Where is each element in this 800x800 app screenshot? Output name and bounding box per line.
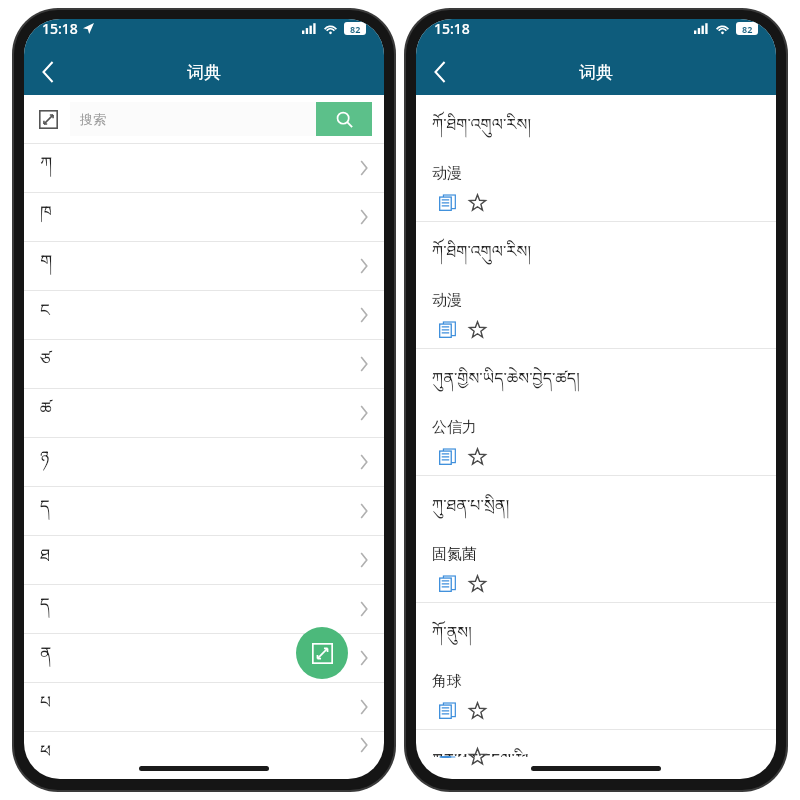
button[interactable]: Details [436, 572, 458, 594]
button[interactable]: Favorite [466, 191, 488, 213]
staticText: 搜索 [80, 111, 106, 127]
button[interactable]: Details [436, 191, 458, 213]
staticText: ན [40, 634, 52, 682]
staticText: ཐ [40, 536, 51, 584]
staticText: ད [40, 487, 50, 535]
button[interactable]: ང [24, 291, 384, 339]
button[interactable]: ཚ [24, 389, 384, 437]
button[interactable]: Favorite [466, 445, 488, 467]
button[interactable]: Details [436, 445, 458, 467]
button[interactable]: Expand [36, 107, 60, 131]
button[interactable]: ཁ [24, 193, 384, 241]
button[interactable]: ཀུ་ཐན་པ་སྲིན། [416, 476, 776, 602]
staticText: 固氮菌 [432, 545, 477, 564]
staticText: 公信力 [432, 418, 477, 437]
button[interactable]: ཀ [24, 144, 384, 192]
button[interactable]: ཀུན་ཕན་དངུལ་རྩི། [416, 730, 776, 757]
button[interactable]: Expand [296, 627, 348, 679]
staticText: 15:18 [434, 19, 470, 38]
button[interactable]: ཀོ་ཐིག་འགུལ་རིས། [416, 222, 776, 348]
button[interactable]: 搜索 [70, 102, 316, 136]
staticText: ཀུན་གྱིས་ཡིད་ཆེས་བྱེད་ཚད། [432, 361, 580, 406]
staticText: 角球 [432, 672, 462, 691]
staticText: 82 [742, 23, 753, 35]
staticText: 动漫 [432, 164, 462, 183]
staticText: ཚ [40, 389, 53, 437]
staticText: ཀོ་ནུས། [432, 615, 472, 660]
button[interactable]: ཕ [24, 732, 384, 757]
staticText: ཉ [40, 438, 50, 486]
button[interactable]: ད [24, 487, 384, 535]
staticText: ཕ [40, 732, 51, 757]
staticText: ཙ [40, 340, 51, 388]
button[interactable]: ཉ [24, 438, 384, 486]
staticText: 词典 [579, 62, 613, 83]
button[interactable]: ཀོ་ནུས། [416, 603, 776, 729]
staticText: 15:18 [42, 19, 78, 38]
staticText: ཀོ་ཐིག་འགུལ་རིས། [432, 107, 531, 152]
staticText: ཀ [40, 144, 52, 192]
button[interactable]: Search [316, 102, 372, 136]
staticText: ཀོ་ཐིག་འགུལ་རིས། [432, 234, 531, 279]
button[interactable]: Favorite [466, 572, 488, 594]
button[interactable]: Favorite [466, 699, 488, 721]
staticText: ད [40, 585, 50, 633]
button[interactable]: Favorite [466, 318, 488, 340]
staticText: ཀུ་ཐན་པ་སྲིན། [432, 488, 509, 533]
button[interactable]: Details [436, 699, 458, 721]
staticText: 词典 [187, 62, 221, 83]
button[interactable]: Back [416, 49, 464, 95]
button[interactable]: པ [24, 683, 384, 731]
button[interactable]: ཙ [24, 340, 384, 388]
staticText: ག [40, 242, 52, 290]
button[interactable]: Back [24, 49, 72, 95]
staticText: 82 [350, 23, 361, 35]
staticText: ང [40, 291, 50, 339]
button[interactable]: ཐ [24, 536, 384, 584]
staticText: 动漫 [432, 291, 462, 310]
button[interactable]: ན [24, 634, 384, 682]
button[interactable]: Details [436, 318, 458, 340]
button[interactable]: ག [24, 242, 384, 290]
staticText: ཁ [40, 193, 52, 241]
button[interactable]: ཀོ་ཐིག་འགུལ་རིས། [416, 95, 776, 221]
staticText: པ [40, 683, 51, 731]
staticText: ཀུན་ཕན་དངུལ་རྩི། [432, 742, 529, 757]
button[interactable]: ཀུན་གྱིས་ཡིད་ཆེས་བྱེད་ཚད། [416, 349, 776, 475]
button[interactable]: ད [24, 585, 384, 633]
